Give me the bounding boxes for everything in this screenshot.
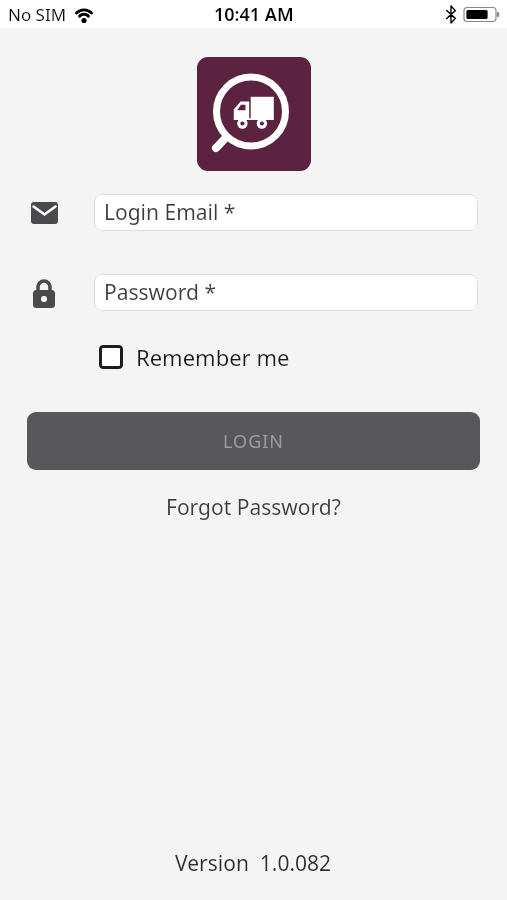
staticText: Password * (104, 278, 217, 307)
button[interactable] (197, 57, 311, 171)
staticText: Version 1.0.082 (175, 849, 332, 878)
button[interactable]: LOGIN (27, 412, 480, 470)
staticText: No SIM (8, 3, 67, 26)
button[interactable]: Forgot Password? (166, 493, 341, 522)
button[interactable]: Login Email * (94, 194, 478, 231)
staticText: Login Email * (104, 198, 236, 227)
staticText: 10:41 AM (214, 2, 294, 27)
staticText: LOGIN (223, 429, 285, 454)
button[interactable]: Password * (94, 274, 478, 311)
button[interactable]: Remember me (99, 342, 290, 372)
staticText: Remember me (136, 342, 290, 372)
